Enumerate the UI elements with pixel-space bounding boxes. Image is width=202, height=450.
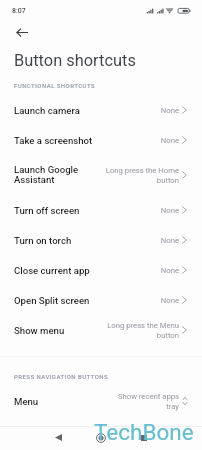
staticText: None xyxy=(160,296,179,305)
button[interactable]: Home xyxy=(89,426,112,449)
staticText: None xyxy=(160,136,179,145)
staticText: Take a screenshot xyxy=(14,135,93,146)
staticText: Menu xyxy=(14,396,39,407)
button[interactable]: Recent apps xyxy=(132,426,155,449)
staticText: Button shortcuts xyxy=(14,51,136,69)
button[interactable]: Close current app xyxy=(0,255,202,285)
staticText: TechBone xyxy=(94,419,194,445)
button[interactable]: Back xyxy=(47,426,70,449)
staticText: Turn on torch xyxy=(14,235,72,246)
staticText: None xyxy=(160,266,179,275)
staticText: None xyxy=(160,236,179,245)
button[interactable]: Launch Google Assistant xyxy=(0,155,202,195)
button[interactable]: Turn off screen xyxy=(0,195,202,225)
button[interactable]: Launch camera xyxy=(0,95,202,125)
staticText: None xyxy=(160,206,179,215)
staticText: Close current app xyxy=(14,265,90,276)
button[interactable]: Navigate up xyxy=(10,21,34,44)
staticText: Launch camera xyxy=(14,105,80,116)
staticText: FUNCTIONAL SHORTCUTS xyxy=(14,82,96,89)
staticText: Long press the Home button xyxy=(105,166,179,185)
staticText: PRESS NAVIGATION BUTTONS xyxy=(14,373,109,380)
button[interactable]: Show menu xyxy=(0,315,202,345)
staticText: Show menu xyxy=(14,325,65,336)
button[interactable]: Open Split screen xyxy=(0,285,202,315)
staticText: Turn off screen xyxy=(14,205,80,216)
staticText: Show recent apps tray xyxy=(117,392,179,411)
staticText: 8:07 xyxy=(12,7,26,15)
button[interactable]: Take a screenshot xyxy=(0,125,202,155)
button[interactable]: Turn on torch xyxy=(0,225,202,255)
staticText: Launch Google Assistant xyxy=(14,164,79,186)
staticText: None xyxy=(160,106,179,115)
button[interactable]: Menu xyxy=(0,386,202,416)
staticText: Long press the Menu button xyxy=(107,321,179,340)
staticText: Open Split screen xyxy=(14,295,90,306)
